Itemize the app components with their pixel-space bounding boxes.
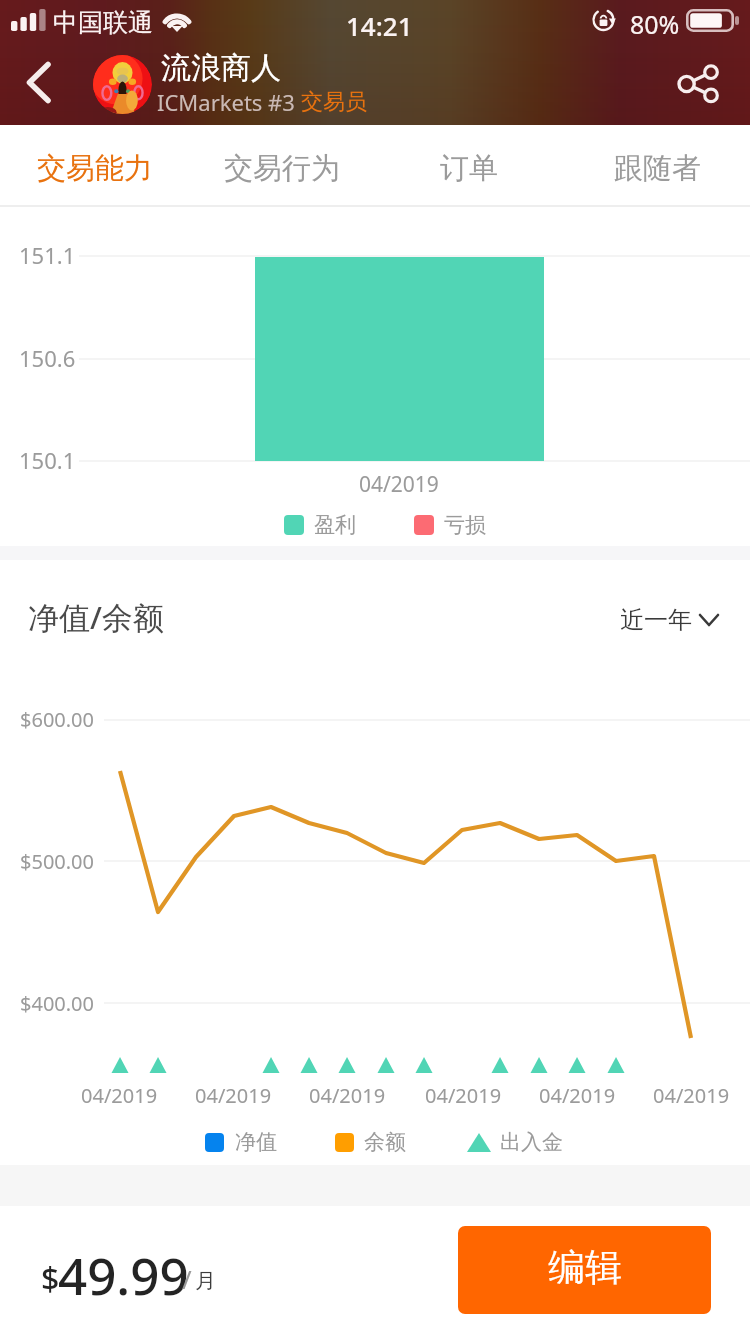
button[interactable]: 编辑 (458, 1226, 711, 1314)
staticText: 49.99 (58, 1240, 189, 1309)
staticText: 交易员 (301, 88, 367, 116)
staticText: 04/2019 (359, 470, 439, 499)
staticText: 04/2019 (309, 1082, 386, 1109)
staticText: 交易行为 (224, 150, 340, 187)
staticText: 盈利 (314, 512, 356, 538)
staticText: 月 (195, 1268, 216, 1294)
button[interactable]: 交易能力 (0, 125, 187, 206)
button[interactable]: 跟随者 (562, 125, 750, 206)
staticText: 净值 (235, 1129, 277, 1155)
staticText: 04/2019 (425, 1082, 502, 1109)
staticText: 跟随者 (614, 150, 701, 187)
staticText: 中国联通 (53, 7, 153, 38)
staticText: 交易能力 (37, 150, 153, 187)
staticText: 亏损 (444, 512, 486, 538)
button[interactable]: 订单 (374, 125, 562, 206)
staticText: $600.00 (20, 706, 94, 733)
staticText: $400.00 (20, 990, 94, 1017)
button[interactable]: 近一年 (620, 605, 718, 635)
button[interactable]: Share (656, 44, 736, 125)
staticText: / (182, 1261, 192, 1296)
staticText: 150.6 (19, 343, 76, 373)
staticText: 近一年 (620, 605, 692, 635)
button[interactable]: 交易行为 (187, 125, 374, 206)
staticText: 04/2019 (653, 1082, 730, 1109)
staticText: 04/2019 (539, 1082, 616, 1109)
staticText: 04/2019 (195, 1082, 272, 1109)
staticText: 订单 (440, 150, 498, 187)
staticText: 80% (630, 7, 680, 41)
staticText: 流浪商人 (161, 49, 281, 87)
staticText: 04/2019 (81, 1082, 158, 1109)
staticText: 151.1 (19, 240, 76, 270)
staticText: 净值/余额 (28, 596, 164, 638)
staticText: 编辑 (548, 1244, 622, 1291)
staticText: ICMarkets #3 (157, 87, 301, 117)
button[interactable]: Back (0, 44, 64, 125)
staticText: $ (41, 1257, 60, 1301)
staticText: 余额 (364, 1129, 406, 1155)
staticText: 14:21 (346, 8, 413, 43)
staticText: 出入金 (500, 1129, 563, 1155)
staticText: $500.00 (20, 848, 94, 875)
staticText: 150.1 (19, 445, 76, 475)
